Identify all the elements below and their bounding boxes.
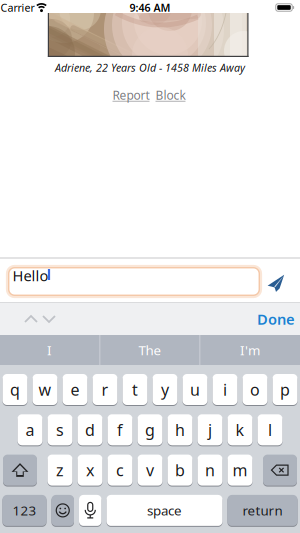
- staticText: k: [235, 419, 244, 440]
- staticText: r: [101, 379, 108, 400]
- button[interactable]: g: [137, 413, 162, 446]
- button[interactable]: h: [167, 413, 192, 446]
- button[interactable]: [264, 269, 288, 293]
- staticText: 9:46 AM: [129, 0, 170, 15]
- button[interactable]: q: [2, 373, 27, 406]
- button[interactable]: i: [212, 373, 237, 406]
- staticText: v: [146, 459, 154, 481]
- button[interactable]: Block: [148, 87, 192, 103]
- button[interactable]: u: [182, 373, 207, 406]
- button[interactable]: [51, 494, 74, 527]
- staticText: Carrier: [0, 0, 34, 15]
- button[interactable]: 123: [2, 494, 46, 527]
- staticText: e: [70, 379, 79, 400]
- staticText: Adriene, 22 Years Old - 1458 Miles Away: [55, 60, 245, 75]
- button[interactable]: x: [77, 454, 102, 487]
- staticText: s: [56, 419, 64, 440]
- staticText: t: [132, 379, 138, 400]
- button[interactable]: r: [92, 373, 117, 406]
- staticText: n: [205, 459, 215, 481]
- staticText: y: [161, 379, 169, 400]
- button[interactable]: t: [122, 373, 147, 406]
- button[interactable]: [24, 315, 38, 323]
- staticText: h: [175, 419, 185, 440]
- staticText: The: [138, 341, 161, 359]
- button[interactable]: [7, 266, 260, 296]
- button[interactable]: Report: [106, 87, 156, 103]
- staticText: 123: [12, 501, 36, 519]
- staticText: Report: [112, 87, 149, 103]
- staticText: q: [10, 379, 20, 400]
- staticText: space: [147, 501, 182, 519]
- button[interactable]: The: [101, 335, 199, 365]
- button[interactable]: m: [227, 454, 252, 487]
- button[interactable]: e: [62, 373, 87, 406]
- staticText: Hello: [12, 266, 48, 285]
- staticText: x: [86, 459, 94, 481]
- staticText: p: [280, 379, 290, 400]
- staticText: z: [56, 459, 64, 481]
- button[interactable]: space: [106, 494, 222, 527]
- staticText: w: [38, 379, 51, 400]
- button[interactable]: p: [272, 373, 297, 406]
- button[interactable]: return: [227, 494, 297, 527]
- button[interactable]: [42, 315, 56, 323]
- staticText: u: [190, 379, 200, 400]
- button[interactable]: c: [107, 454, 132, 487]
- staticText: Done: [257, 309, 295, 329]
- button[interactable]: j: [197, 413, 222, 446]
- staticText: c: [116, 459, 124, 481]
- staticText: return: [242, 501, 282, 519]
- button[interactable]: s: [47, 413, 72, 446]
- staticText: d: [85, 419, 95, 440]
- button[interactable]: z: [47, 454, 72, 487]
- staticText: f: [117, 419, 123, 440]
- staticText: a: [25, 419, 34, 440]
- button[interactable]: [3, 454, 37, 487]
- button[interactable]: b: [167, 454, 192, 487]
- button[interactable]: l: [257, 413, 282, 446]
- button[interactable]: k: [227, 413, 252, 446]
- staticText: m: [232, 459, 247, 481]
- button[interactable]: f: [107, 413, 132, 446]
- button[interactable]: y: [152, 373, 177, 406]
- button[interactable]: [79, 494, 101, 527]
- staticText: Block: [155, 87, 185, 103]
- button[interactable]: I: [0, 335, 98, 365]
- staticText: i: [223, 379, 227, 400]
- staticText: b: [175, 459, 185, 481]
- button[interactable]: Done: [256, 309, 296, 329]
- button[interactable]: v: [137, 454, 162, 487]
- staticText: o: [250, 379, 260, 400]
- staticText: j: [208, 419, 212, 440]
- button[interactable]: a: [17, 413, 42, 446]
- button[interactable]: d: [77, 413, 102, 446]
- button[interactable]: I'm: [201, 335, 299, 365]
- button[interactable]: w: [32, 373, 57, 406]
- staticText: I'm: [240, 341, 260, 359]
- button[interactable]: o: [242, 373, 267, 406]
- staticText: I: [47, 341, 52, 359]
- staticText: g: [145, 419, 155, 440]
- button[interactable]: n: [197, 454, 222, 487]
- staticText: l: [268, 419, 272, 440]
- button[interactable]: [263, 454, 297, 487]
